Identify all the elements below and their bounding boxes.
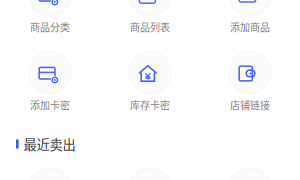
staticText: 添加卡密 [30,98,70,112]
staticText: 商品分类 [30,20,70,34]
button[interactable]: 店铺链接 [200,50,300,112]
staticText: 最近卖出 [24,134,76,154]
staticText: 添加商品 [230,20,270,34]
staticText: 库存卡密 [130,98,170,112]
button[interactable]: 库存卡密 [100,50,200,112]
staticText: 商品列表 [130,20,170,34]
button[interactable]: 商品分类 [0,0,100,34]
button[interactable]: 添加商品 [200,0,300,34]
staticText: 店铺链接 [230,98,270,112]
button[interactable]: 添加卡密 [0,50,100,112]
button[interactable]: 商品列表 [100,0,200,34]
